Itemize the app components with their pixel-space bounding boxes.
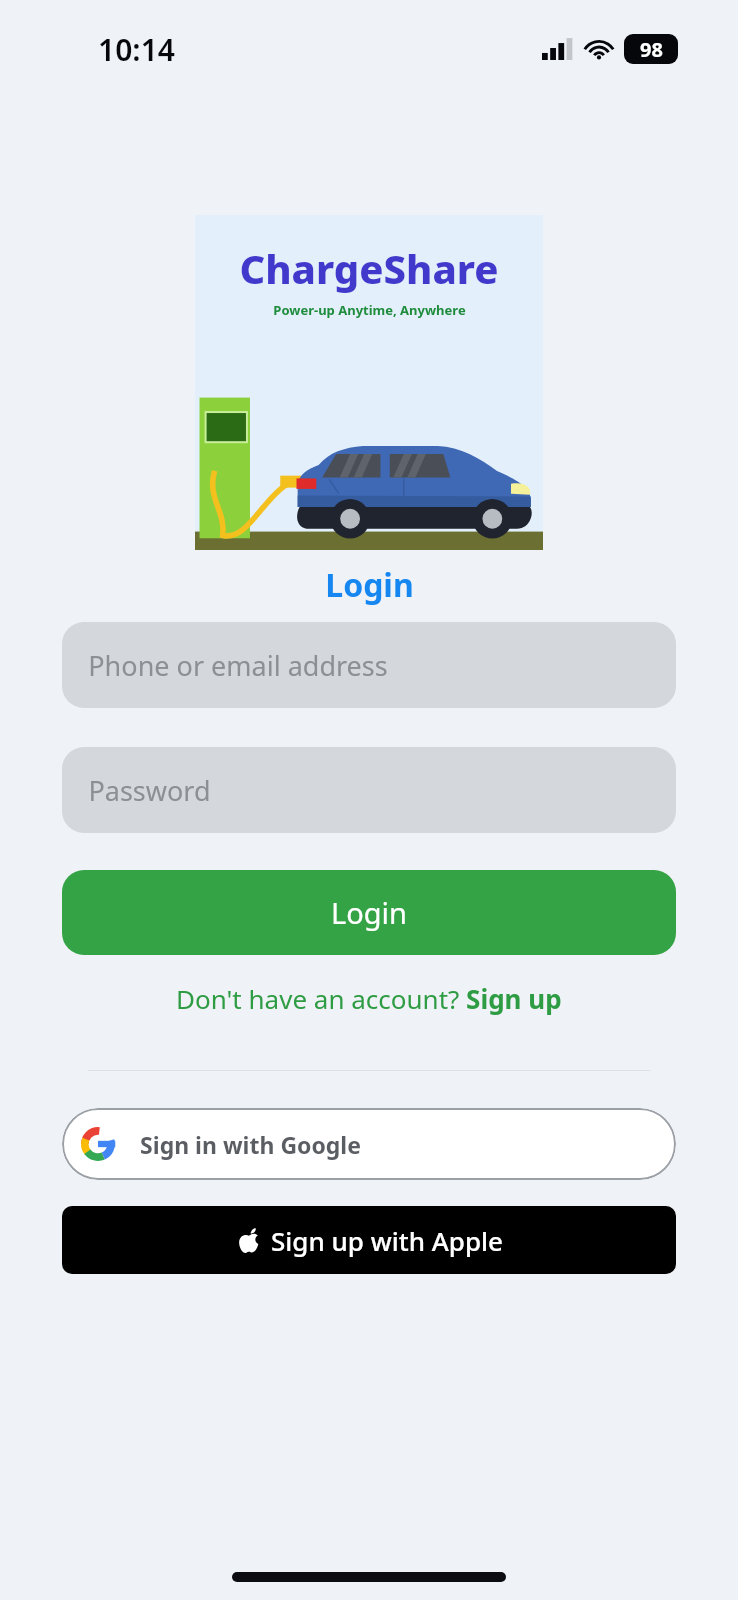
staticText: Don't have an account? Sign up [176,981,562,1016]
staticText: Sign in with Google [140,1129,361,1160]
button[interactable]: Don't have an account? Sign up [168,977,570,1020]
staticText: 10:14 [98,29,175,70]
staticText: Login [331,893,407,932]
staticText: Phone or email address [88,647,388,684]
staticText: 98 [640,36,663,63]
staticText: ChargeShare [239,241,499,295]
staticText: Login [325,563,414,607]
staticText: Password [88,772,211,809]
button[interactable]: Sign up with Apple [62,1206,676,1274]
staticText: Power-up Anytime, Anywhere [273,301,466,319]
button[interactable]: Sign in with Google [62,1108,676,1180]
staticText: Sign up with Apple [271,1223,503,1258]
button[interactable]: Login [62,870,676,955]
button[interactable]: Password [62,747,676,833]
button[interactable]: Phone or email address [62,622,676,708]
